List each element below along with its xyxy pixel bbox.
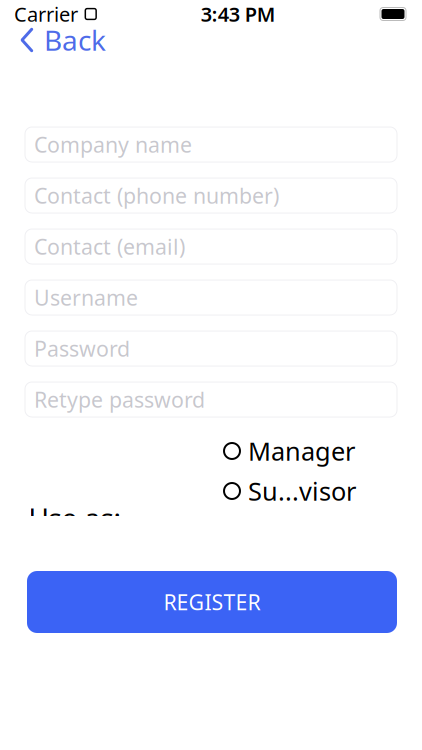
button[interactable]: Back bbox=[13, 22, 112, 58]
staticText: Company name bbox=[34, 130, 192, 159]
staticText: Carrier bbox=[14, 1, 78, 27]
button[interactable]: Manager bbox=[224, 438, 394, 464]
button[interactable]: Username bbox=[25, 280, 397, 315]
button[interactable]: REGISTER bbox=[27, 571, 397, 633]
staticText: Use as: bbox=[28, 499, 121, 536]
staticText: Manager bbox=[248, 434, 355, 468]
button[interactable]: Password bbox=[25, 331, 397, 366]
staticText: REGISTER bbox=[163, 588, 260, 616]
staticText: Su...visor bbox=[248, 474, 356, 508]
staticText: Contact (phone number) bbox=[34, 181, 279, 210]
button[interactable]: Retype password bbox=[25, 382, 397, 417]
button[interactable]: Contact (phone number) bbox=[25, 178, 397, 213]
staticText: Username bbox=[34, 283, 138, 312]
staticText: Retype password bbox=[34, 385, 205, 414]
staticText: 3:43 PM bbox=[201, 1, 276, 27]
staticText: Password bbox=[34, 334, 130, 363]
button[interactable]: Company name bbox=[25, 127, 397, 162]
button[interactable]: Contact (email) bbox=[25, 229, 397, 264]
button[interactable]: Su...visor bbox=[224, 478, 394, 504]
staticText: Contact (email) bbox=[34, 232, 185, 261]
staticText: Back bbox=[44, 21, 106, 59]
